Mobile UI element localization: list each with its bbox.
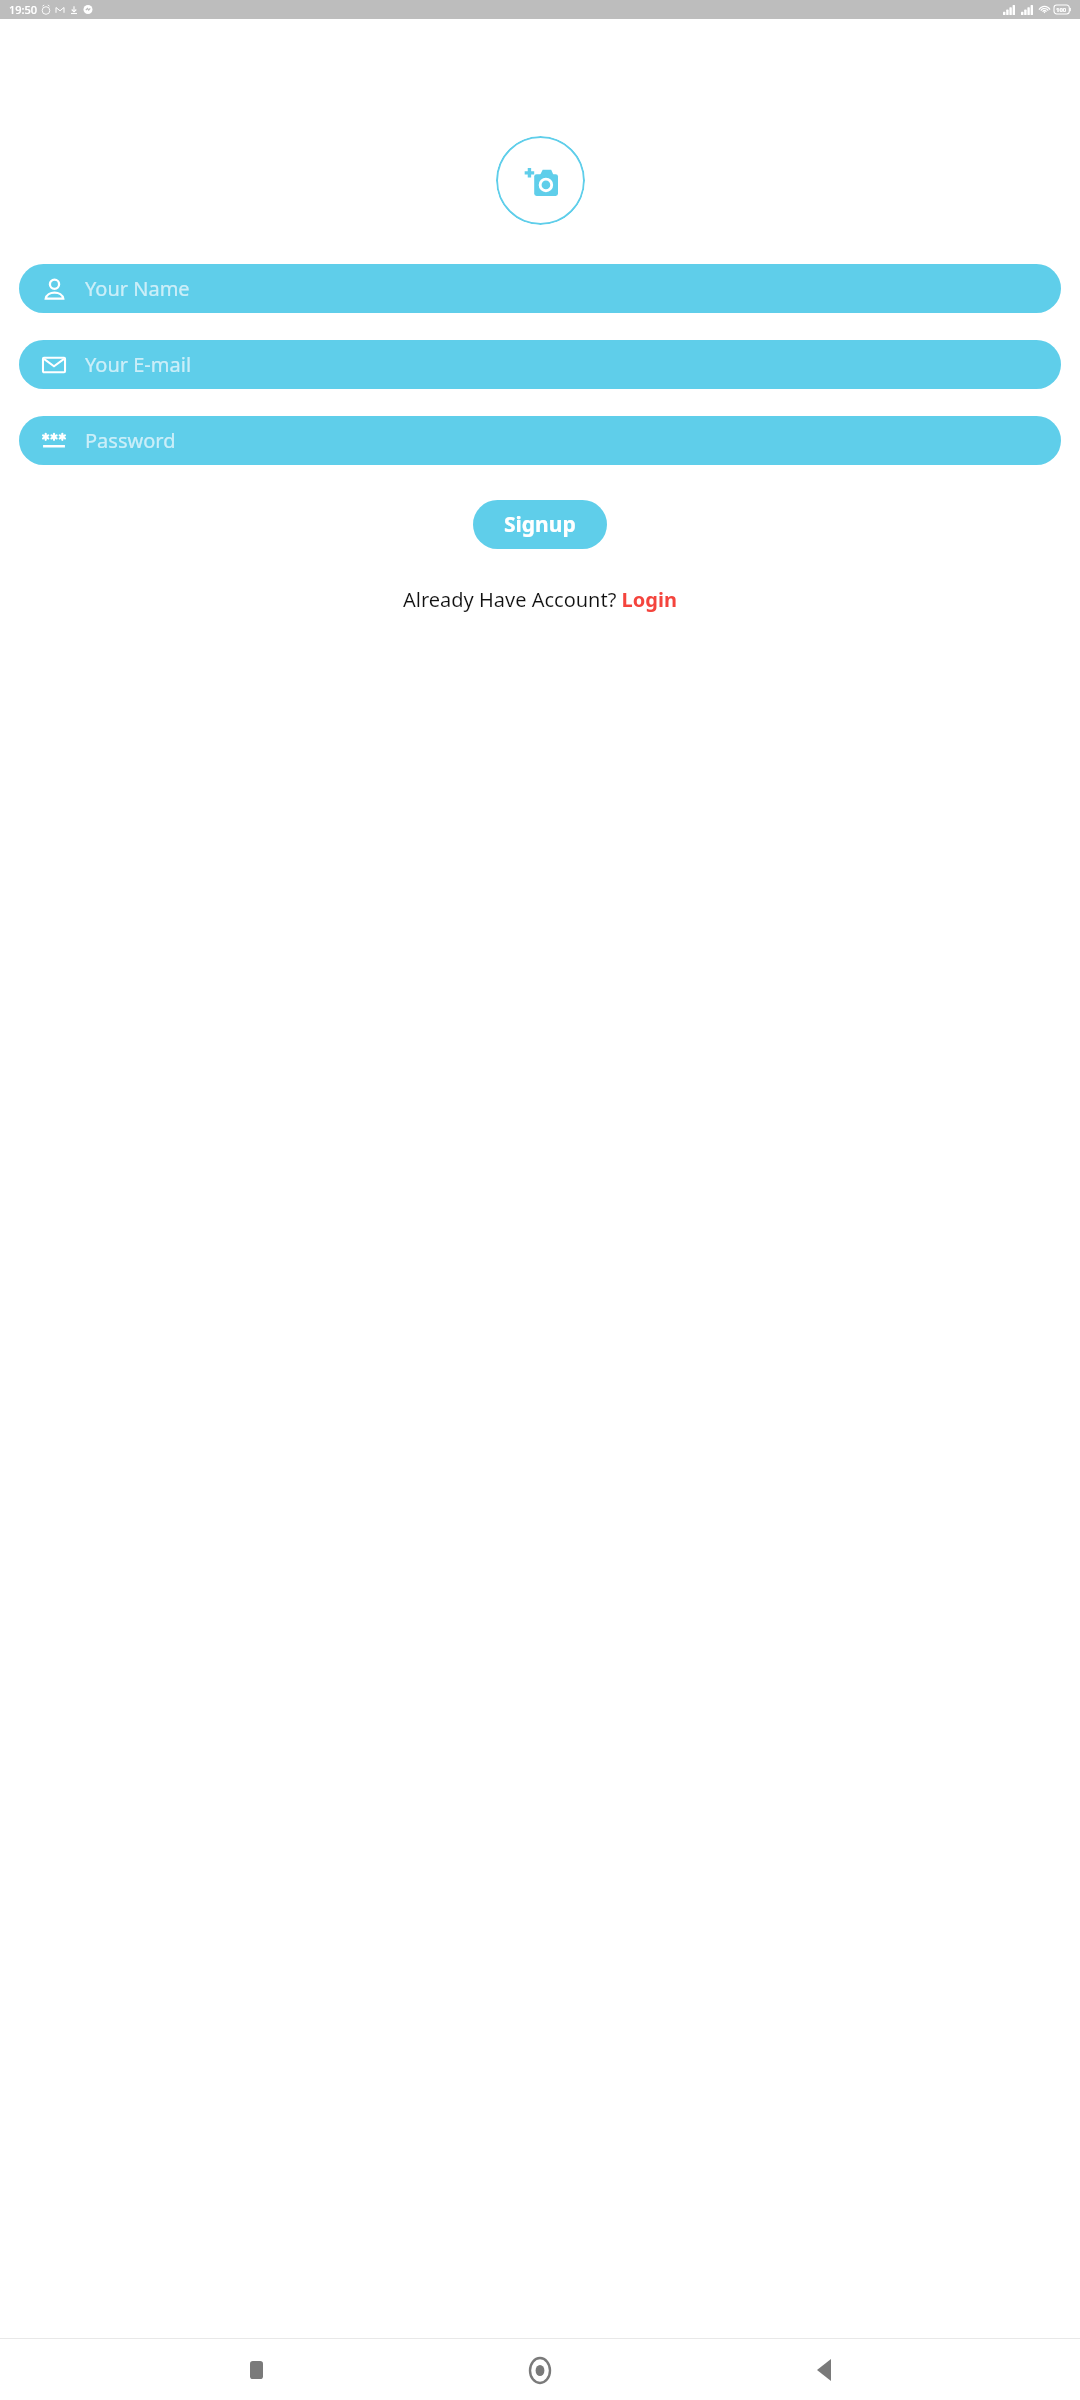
staticText: Already Have Account? Login	[403, 586, 677, 613]
button[interactable]: Your E-mail	[19, 340, 1061, 389]
staticText: Signup	[504, 510, 576, 539]
button[interactable]: Back	[796, 2342, 852, 2398]
button[interactable]: Signup	[473, 500, 607, 549]
staticText: 19:50	[9, 2, 38, 17]
button[interactable]: Add profile photo	[496, 136, 585, 225]
button[interactable]: Already Have Account? Login	[393, 580, 687, 619]
staticText: Your E-mail	[85, 351, 192, 378]
staticText: Your Name	[85, 275, 190, 302]
button[interactable]: Home	[512, 2342, 568, 2398]
staticText: Password	[85, 427, 176, 454]
button[interactable]: Recents	[228, 2342, 284, 2398]
button[interactable]: Your Name	[19, 264, 1061, 313]
staticText: 100	[1056, 6, 1067, 14]
button[interactable]: Password	[19, 416, 1061, 465]
